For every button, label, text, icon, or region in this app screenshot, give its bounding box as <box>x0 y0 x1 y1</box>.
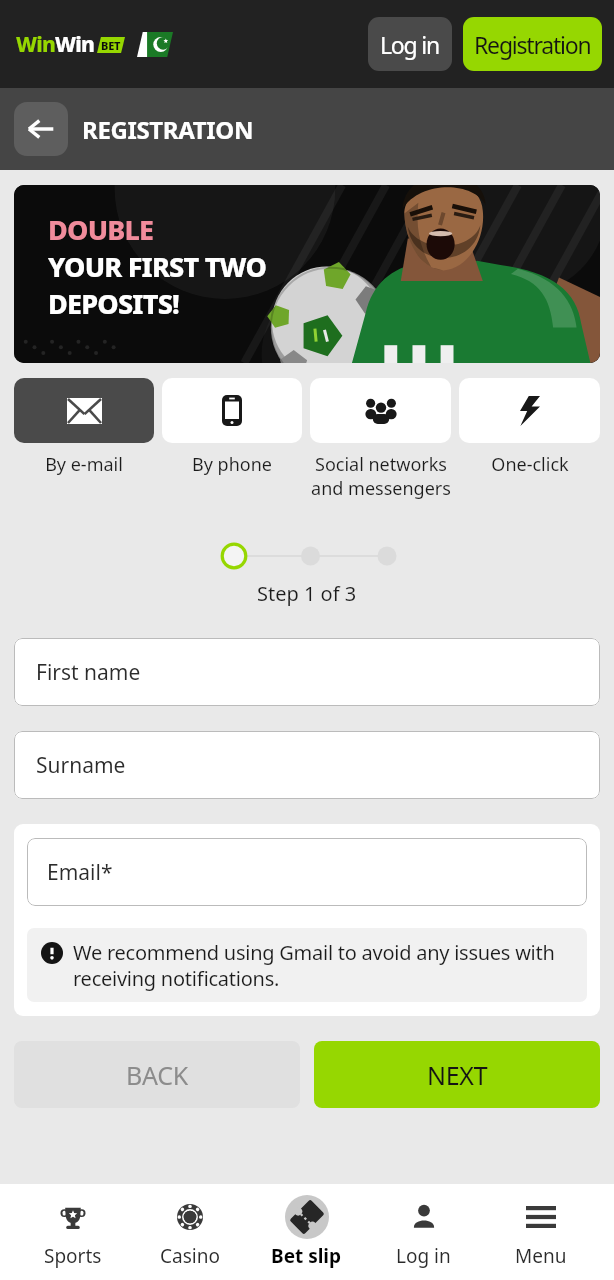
staticText: DEPOSITS! <box>48 285 179 322</box>
button[interactable]: Bet slip <box>248 1195 365 1269</box>
staticText: DOUBLE <box>48 211 154 248</box>
button[interactable]: Registration <box>463 17 602 71</box>
staticText: Registration <box>474 29 591 60</box>
button[interactable]: By e-mail <box>14 378 154 477</box>
button[interactable]: Back <box>14 102 68 156</box>
button[interactable]: Casino <box>131 1195 248 1269</box>
staticText: Email* <box>47 858 113 887</box>
staticText: Log in <box>396 1243 451 1269</box>
button[interactable]: By phone <box>162 378 302 477</box>
button[interactable]: First name <box>14 638 600 706</box>
staticText: Casino <box>160 1243 220 1269</box>
staticText: BET <box>101 38 121 53</box>
staticText: By phone <box>192 452 272 477</box>
staticText: By e-mail <box>45 452 123 477</box>
button[interactable]: Log in <box>365 1195 482 1269</box>
button[interactable]: Surname <box>14 731 600 799</box>
button[interactable]: BACK <box>14 1041 300 1108</box>
button[interactable]: Email* <box>27 838 587 906</box>
button[interactable]: DOUBLE <box>14 185 600 363</box>
staticText: Win <box>55 30 94 59</box>
staticText: NEXT <box>427 1058 488 1092</box>
staticText: Bet slip <box>271 1243 342 1269</box>
staticText: We recommend using Gmail to avoid any is… <box>73 939 573 991</box>
staticText: Sports <box>44 1243 102 1269</box>
button[interactable]: One-click <box>459 378 600 477</box>
staticText: One-click <box>491 452 569 477</box>
staticText: REGISTRATION <box>82 113 254 146</box>
staticText: Menu <box>515 1243 567 1269</box>
button[interactable]: NEXT <box>314 1041 600 1108</box>
button[interactable]: Log in <box>368 17 452 71</box>
button[interactable]: Menu <box>482 1195 599 1269</box>
staticText: YOUR FIRST TWO <box>48 248 267 285</box>
button[interactable]: Sports <box>15 1195 131 1269</box>
staticText: Win <box>16 30 55 59</box>
staticText: BACK <box>126 1058 188 1092</box>
staticText: Social networks and messengers <box>311 452 451 500</box>
staticText: Step 1 of 3 <box>257 580 357 607</box>
staticText: First name <box>36 658 141 687</box>
button[interactable]: Social networks and messengers <box>310 378 451 500</box>
staticText: Surname <box>36 751 126 780</box>
staticText: Log in <box>380 29 440 60</box>
